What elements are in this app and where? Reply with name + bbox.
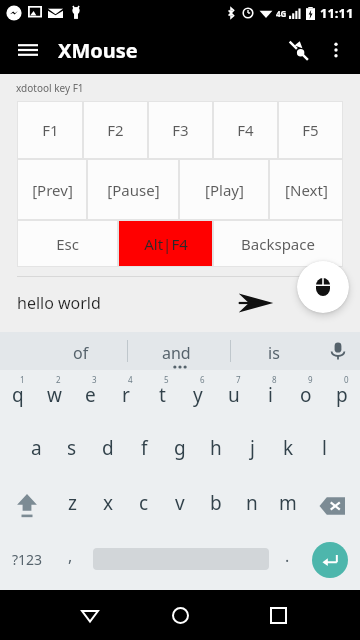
staticText: Alt|F4 — [144, 234, 188, 254]
button[interactable]: and — [162, 342, 191, 364]
button[interactable]: F4 — [213, 101, 278, 159]
staticText: i — [268, 382, 273, 408]
staticText: t — [159, 382, 166, 408]
button[interactable]: of — [73, 342, 89, 364]
staticText: s — [67, 435, 77, 461]
button[interactable]: m — [270, 485, 306, 521]
staticText: XMouse — [58, 37, 138, 64]
button[interactable]: t — [144, 377, 180, 413]
button[interactable]: k — [270, 430, 306, 466]
button[interactable]: Backspace — [308, 487, 356, 525]
button[interactable]: hello world — [17, 292, 101, 314]
button[interactable]: z — [54, 485, 90, 521]
button[interactable]: F1 — [17, 101, 83, 159]
button[interactable]: , — [68, 545, 73, 567]
button[interactable]: Mouse pad — [297, 261, 349, 313]
staticText: a — [31, 435, 42, 461]
staticText: o — [300, 382, 312, 408]
staticText: k — [283, 435, 294, 461]
staticText: F4 — [237, 120, 254, 140]
button[interactable]: Backspace — [213, 220, 343, 267]
staticText: y — [193, 382, 203, 408]
button[interactable]: v — [162, 485, 198, 521]
button[interactable]: j — [234, 430, 270, 466]
staticText: xdotool key F1 — [16, 81, 84, 95]
button[interactable]: ?123 — [12, 550, 43, 569]
staticText: [Prev] — [32, 180, 73, 200]
button[interactable]: Alt|F4 — [118, 220, 213, 267]
button[interactable]: F5 — [278, 101, 343, 159]
button[interactable]: b — [198, 485, 234, 521]
staticText: Esc — [56, 234, 79, 254]
staticText: 4G — [276, 8, 287, 19]
button[interactable]: [Pause] — [87, 159, 179, 220]
button[interactable]: p — [324, 377, 360, 413]
staticText: F1 — [42, 120, 59, 140]
staticText: 3 — [92, 374, 97, 385]
staticText: l — [322, 435, 327, 461]
button[interactable]: n — [234, 485, 270, 521]
staticText: h — [210, 435, 222, 461]
button[interactable]: c — [126, 485, 162, 521]
button[interactable]: Shift — [2, 485, 52, 527]
staticText: F2 — [107, 120, 124, 140]
staticText: q — [12, 382, 24, 408]
button[interactable]: q — [0, 377, 36, 413]
button[interactable]: r — [108, 377, 144, 413]
staticText: r — [122, 382, 130, 408]
button[interactable]: [Play] — [179, 159, 269, 220]
button[interactable]: a — [18, 430, 54, 466]
staticText: 5 — [164, 374, 169, 385]
staticText: 6 — [200, 374, 205, 385]
button[interactable]: l — [306, 430, 342, 466]
staticText: [Pause] — [107, 180, 160, 200]
staticText: 9 — [308, 374, 313, 385]
button[interactable]: Esc — [17, 220, 118, 267]
button[interactable]: e — [72, 377, 108, 413]
button[interactable]: g — [162, 430, 198, 466]
staticText: Backspace — [241, 234, 315, 254]
staticText: p — [336, 382, 348, 408]
button[interactable]: x — [90, 485, 126, 521]
staticText: d — [102, 435, 114, 461]
staticText: 8 — [272, 374, 277, 385]
button[interactable]: Home — [150, 590, 210, 640]
button[interactable]: [Next] — [269, 159, 343, 220]
staticText: m — [279, 490, 297, 516]
button[interactable]: Connect — [278, 30, 318, 70]
staticText: 4 — [128, 374, 133, 385]
button[interactable]: . — [285, 545, 290, 567]
staticText: g — [174, 435, 186, 461]
button[interactable]: h — [198, 430, 234, 466]
staticText: x — [103, 490, 114, 516]
button[interactable]: [Prev] — [17, 159, 87, 220]
button[interactable]: i — [252, 377, 288, 413]
staticText: z — [68, 490, 77, 516]
button[interactable]: F3 — [148, 101, 213, 159]
button[interactable]: s — [54, 430, 90, 466]
button[interactable]: o — [288, 377, 324, 413]
button[interactable]: y — [180, 377, 216, 413]
staticText: b — [210, 490, 222, 516]
staticText: 11:11 — [320, 4, 354, 22]
button[interactable]: Voice input — [328, 341, 348, 361]
button[interactable]: f — [126, 430, 162, 466]
button[interactable]: Enter — [312, 542, 348, 578]
button[interactable]: F2 — [83, 101, 148, 159]
button[interactable]: is — [268, 342, 280, 364]
staticText: 2 — [56, 374, 61, 385]
staticText: [Play] — [205, 180, 244, 200]
button[interactable]: u — [216, 377, 252, 413]
button[interactable]: d — [90, 430, 126, 466]
staticText: [Next] — [285, 180, 328, 200]
staticText: 0 — [344, 374, 349, 385]
button[interactable]: Send — [232, 279, 280, 327]
button[interactable]: Open navigation menu — [10, 32, 46, 68]
button[interactable]: Back — [60, 590, 120, 640]
staticText: 7 — [236, 374, 241, 385]
button[interactable]: Recent apps — [248, 590, 308, 640]
staticText: e — [85, 382, 96, 408]
button[interactable]: w — [36, 377, 72, 413]
button[interactable]: More options — [318, 32, 354, 68]
